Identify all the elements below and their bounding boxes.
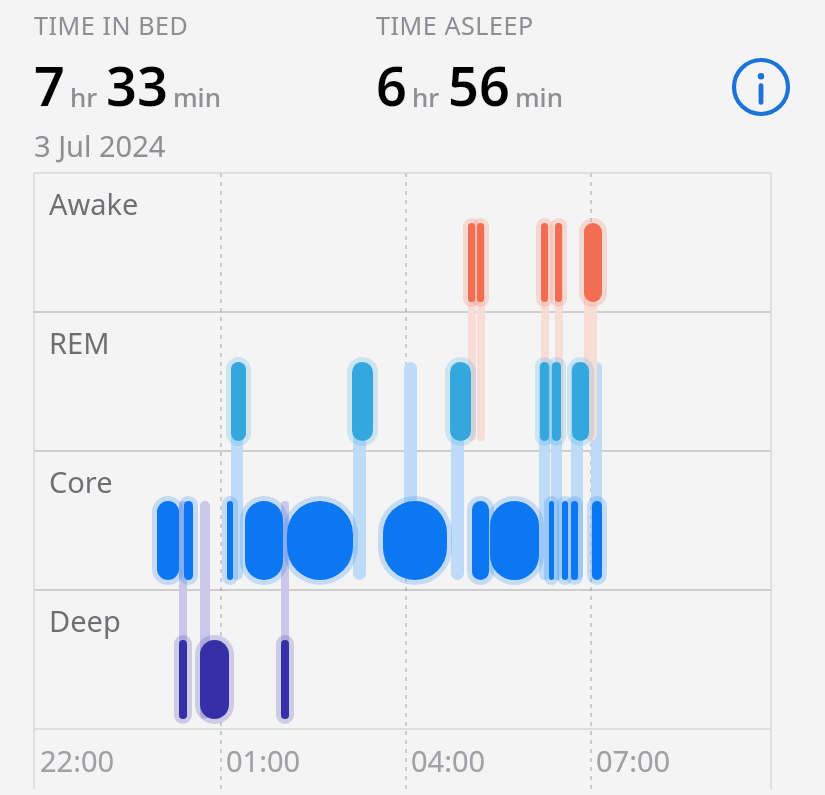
staticText: 22:00 [40, 741, 115, 780]
staticText: 07:00 [596, 741, 671, 780]
staticText: Deep [49, 601, 121, 640]
staticText: min [173, 79, 221, 114]
staticText: 6 [376, 48, 407, 122]
staticText: Core [49, 462, 113, 501]
staticText: TIME IN BED [34, 8, 189, 42]
button[interactable]: More information [730, 56, 792, 118]
staticText: REM [49, 323, 110, 362]
staticText: hr [70, 79, 98, 114]
staticText: min [515, 79, 563, 114]
staticText: TIME ASLEEP [376, 8, 534, 42]
staticText: 01:00 [226, 741, 301, 780]
staticText: 56 [448, 48, 510, 122]
staticText: 04:00 [411, 741, 486, 780]
staticText: 3 Jul 2024 [34, 126, 166, 165]
staticText: Awake [49, 184, 139, 223]
staticText: 33 [106, 48, 168, 122]
staticText: 7 [34, 48, 65, 122]
staticText: hr [412, 79, 440, 114]
